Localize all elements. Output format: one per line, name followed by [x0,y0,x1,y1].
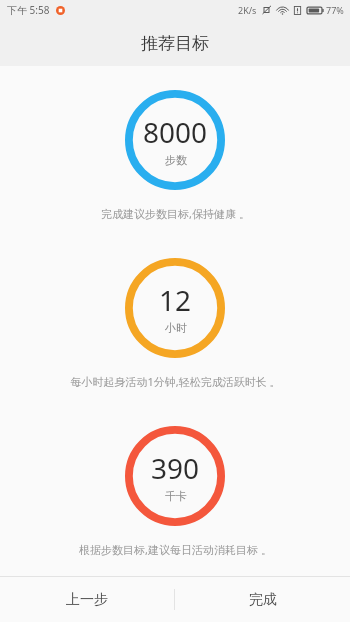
staticText: 小时 [165,321,187,335]
staticText: 步数 [165,153,187,167]
staticText: 完成建议步数目标,保持健康 。 [101,206,250,221]
staticText: 77% [326,4,344,16]
button[interactable]: 上一步 [0,577,174,622]
staticText: 每小时起身活动1分钟,轻松完成活跃时长 。 [70,374,281,389]
staticText: 8000 [143,113,208,151]
staticText: 下午 5:58 [7,3,50,17]
staticText: 根据步数目标,建议每日活动消耗目标 。 [79,542,272,557]
staticText: 390 [151,449,200,487]
staticText: 12 [159,281,192,319]
staticText: 千卡 [165,489,187,503]
staticText: 推荐目标 [141,33,209,54]
staticText: 上一步 [66,591,108,609]
staticText: 完成 [249,591,277,609]
staticText: 2K/s [238,4,257,16]
button[interactable]: 完成 [175,577,350,622]
